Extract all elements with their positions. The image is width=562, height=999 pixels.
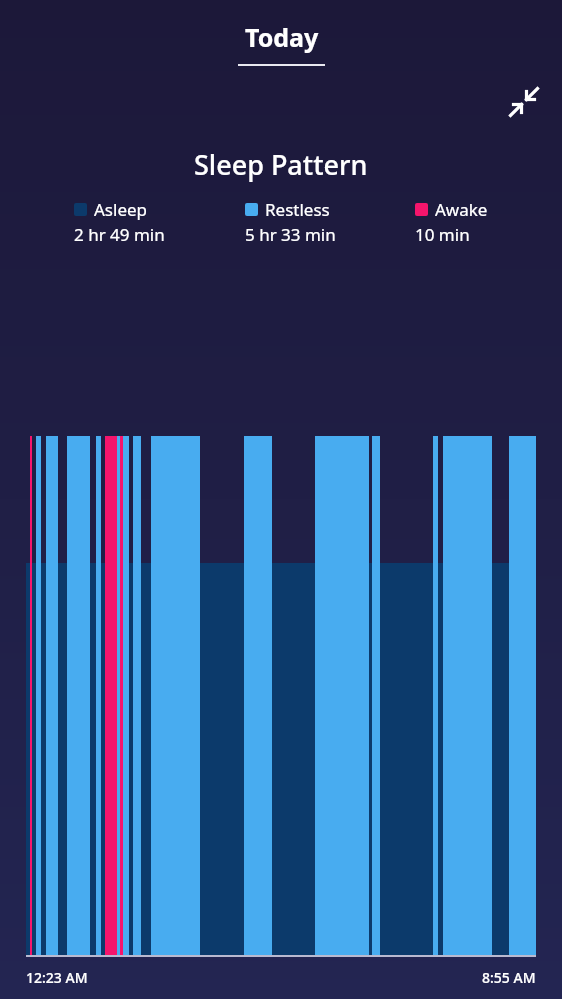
staticText: Restless xyxy=(265,198,330,221)
staticText: Asleep xyxy=(94,198,148,221)
button[interactable]: Asleep xyxy=(74,198,165,246)
staticText: 12:23 AM xyxy=(26,968,88,987)
staticText: Awake xyxy=(435,198,488,221)
staticText: 8:55 AM xyxy=(482,968,536,987)
staticText: 2 hr 49 min xyxy=(74,223,165,246)
button[interactable]: Restless xyxy=(245,198,336,246)
button[interactable]: Awake xyxy=(415,198,488,246)
staticText: Sleep Pattern xyxy=(194,146,368,183)
staticText: 10 min xyxy=(415,223,470,246)
staticText: Today xyxy=(245,20,319,54)
button[interactable]: Collapse xyxy=(504,82,544,122)
button[interactable]: Today xyxy=(230,18,333,68)
staticText: 5 hr 33 min xyxy=(245,223,336,246)
